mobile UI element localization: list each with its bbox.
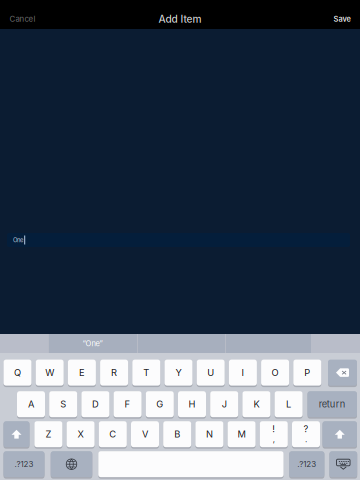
button[interactable]: D: [81, 390, 109, 418]
button[interactable]: ?: [292, 420, 320, 448]
button[interactable]: !: [260, 420, 288, 448]
staticText: U: [207, 367, 214, 378]
button[interactable]: return: [307, 390, 357, 418]
staticText: T: [143, 367, 149, 378]
button[interactable]: I: [229, 359, 257, 387]
staticText: Cancel: [9, 14, 35, 24]
button[interactable]: L: [275, 390, 303, 418]
button[interactable]: M: [228, 420, 256, 448]
staticText: ,: [273, 434, 275, 444]
button[interactable]: X: [67, 420, 95, 448]
staticText: return: [319, 399, 346, 410]
staticText: Q: [14, 367, 21, 378]
button[interactable]: Save: [310, 9, 350, 29]
staticText: B: [174, 429, 180, 440]
button[interactable]: Next keyboard: [51, 450, 92, 478]
staticText: “One”: [82, 339, 102, 348]
button[interactable]: T: [132, 359, 160, 387]
button[interactable]: J: [210, 390, 238, 418]
button[interactable]: O: [261, 359, 289, 387]
staticText: K: [253, 399, 259, 410]
staticText: .?123: [14, 459, 33, 469]
staticText: Add Item: [158, 13, 201, 25]
staticText: I: [241, 367, 244, 378]
staticText: H: [188, 399, 195, 410]
button[interactable]: C: [99, 420, 127, 448]
staticText: J: [222, 399, 227, 410]
button[interactable]: Shift: [322, 420, 357, 448]
button[interactable]: P: [293, 359, 321, 387]
staticText: ?: [303, 423, 308, 434]
button[interactable]: U: [197, 359, 225, 387]
button[interactable]: Shift: [3, 420, 29, 448]
staticText: One: [13, 236, 23, 244]
staticText: N: [206, 429, 213, 440]
button[interactable]: “One”: [48, 334, 137, 353]
button[interactable]: R: [100, 359, 128, 387]
button[interactable]: Cancel: [9, 9, 49, 29]
button[interactable]: Q: [3, 359, 31, 387]
staticText: S: [60, 399, 66, 410]
staticText: O: [272, 367, 279, 378]
button[interactable]: .?123: [3, 450, 44, 478]
button[interactable]: A: [17, 390, 45, 418]
button[interactable]: Delete: [328, 359, 357, 387]
staticText: P: [304, 367, 310, 378]
staticText: X: [78, 429, 84, 440]
button[interactable]: B: [163, 420, 191, 448]
staticText: Y: [175, 367, 181, 378]
staticText: G: [156, 399, 163, 410]
button[interactable]: .?123: [289, 450, 324, 478]
staticText: W: [45, 367, 54, 378]
button[interactable]: Z: [34, 420, 62, 448]
staticText: V: [142, 429, 148, 440]
staticText: M: [238, 429, 246, 440]
staticText: L: [286, 399, 291, 410]
staticText: A: [28, 399, 34, 410]
button[interactable]: [98, 450, 284, 478]
staticText: D: [92, 399, 99, 410]
staticText: C: [109, 429, 116, 440]
staticText: R: [111, 367, 117, 378]
staticText: F: [125, 399, 131, 410]
button[interactable]: S: [49, 390, 77, 418]
button[interactable]: K: [242, 390, 270, 418]
button[interactable]: N: [195, 420, 223, 448]
button[interactable]: W: [36, 359, 64, 387]
staticText: Z: [45, 429, 51, 440]
staticText: .: [305, 434, 307, 444]
staticText: .?123: [297, 459, 316, 469]
staticText: E: [79, 367, 85, 378]
button[interactable]: Hide keyboard: [329, 450, 357, 478]
button[interactable]: F: [114, 390, 142, 418]
button[interactable]: H: [178, 390, 206, 418]
staticText: !: [272, 423, 275, 434]
button[interactable]: G: [146, 390, 174, 418]
staticText: Save: [333, 14, 350, 23]
button[interactable]: Y: [164, 359, 192, 387]
button[interactable]: V: [131, 420, 159, 448]
button[interactable]: E: [68, 359, 96, 387]
